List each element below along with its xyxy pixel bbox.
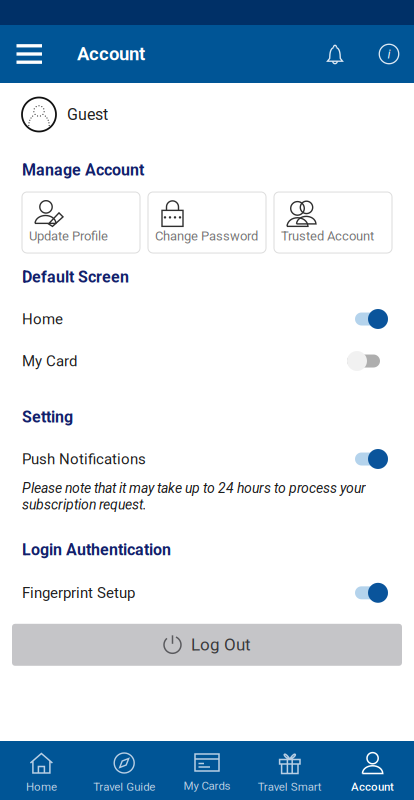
button[interactable]: Notifications: [306, 25, 364, 83]
staticText: Setting: [22, 408, 73, 426]
staticText: Default Screen: [22, 268, 129, 286]
button[interactable]: My Cards: [166, 741, 248, 800]
staticText: Log Out: [191, 635, 251, 655]
staticText: My Card: [22, 352, 77, 370]
button[interactable]: Menu: [0, 25, 77, 83]
button[interactable]: Travel Smart: [248, 741, 331, 800]
staticText: i: [387, 46, 390, 62]
button[interactable]: Push Notifications: [0, 438, 414, 480]
staticText: subscription request.: [22, 496, 147, 513]
button[interactable]: Travel Guide: [83, 741, 166, 800]
staticText: My Cards: [183, 779, 230, 792]
button[interactable]: Log Out: [12, 624, 402, 666]
staticText: Home: [26, 780, 57, 793]
button[interactable]: Fingerprint Setup: [0, 572, 414, 614]
staticText: Trusted Account: [281, 228, 374, 244]
button[interactable]: Change Password: [148, 192, 266, 253]
staticText: Travel Guide: [93, 780, 155, 793]
staticText: Account: [351, 780, 394, 793]
button[interactable]: Update Profile: [22, 192, 140, 253]
staticText: Home: [22, 310, 63, 328]
button[interactable]: My Card: [0, 340, 414, 382]
button[interactable]: Home: [0, 298, 414, 340]
staticText: Guest: [67, 105, 108, 124]
button[interactable]: Home: [0, 741, 83, 800]
staticText: Push Notifications: [22, 450, 146, 468]
button[interactable]: Account: [331, 741, 414, 800]
staticText: Account: [77, 43, 145, 65]
staticText: Change Password: [155, 228, 258, 244]
staticText: Manage Account: [22, 161, 144, 179]
staticText: Fingerprint Setup: [22, 584, 135, 602]
staticText: Travel Smart: [258, 780, 322, 793]
staticText: Update Profile: [29, 228, 108, 244]
staticText: Please note that it may take up to 24 ho…: [22, 480, 366, 496]
button[interactable]: Information: [364, 25, 414, 83]
button[interactable]: Trusted Account: [274, 192, 392, 253]
staticText: Login Authentication: [22, 540, 171, 559]
